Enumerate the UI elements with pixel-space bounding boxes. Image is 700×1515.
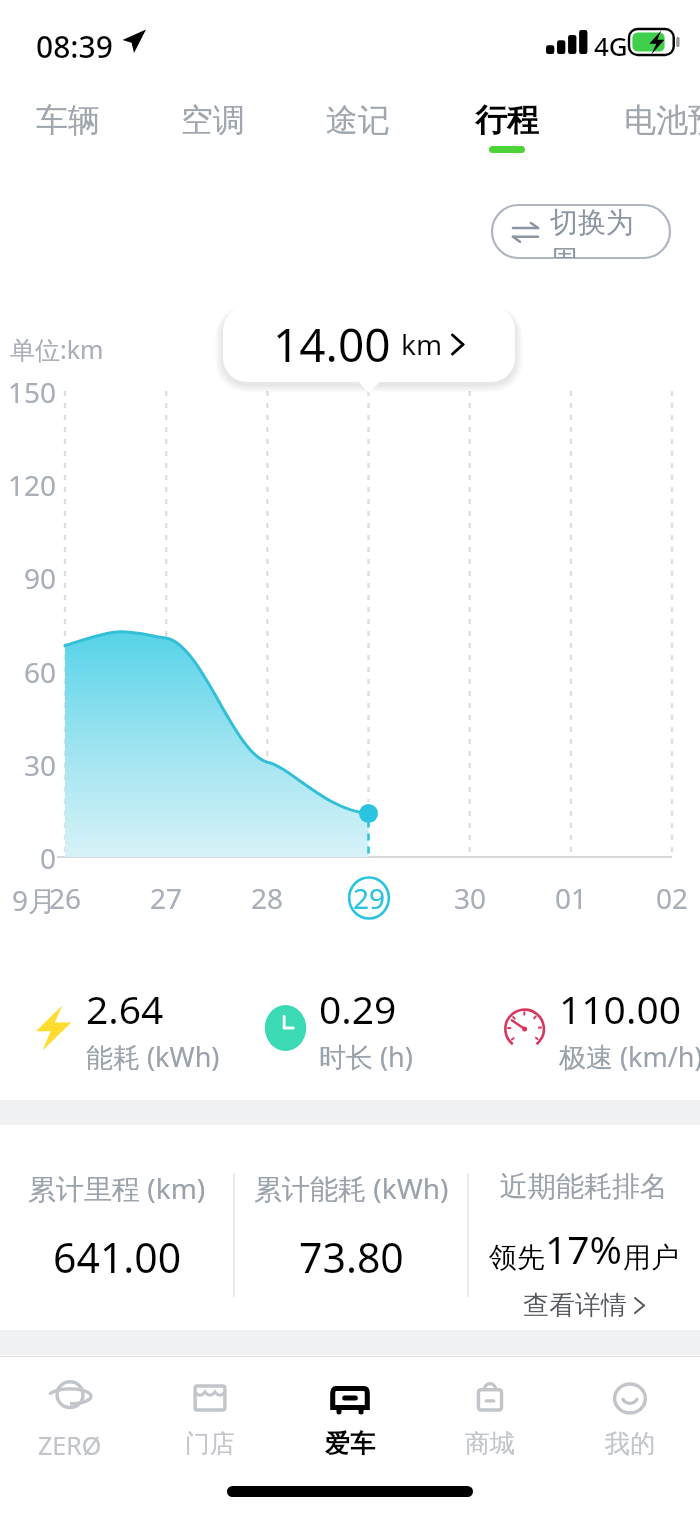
staticText: 110.00: [559, 982, 681, 1035]
staticText: 爱车: [325, 1428, 375, 1459]
staticText: 27: [150, 879, 183, 917]
button[interactable]: 爱车: [280, 1358, 420, 1470]
button[interactable]: 0.29: [263, 975, 413, 1081]
staticText: 641.00: [53, 1229, 182, 1285]
button[interactable]: 商城: [420, 1358, 560, 1470]
staticText: 切换为周: [550, 205, 654, 258]
staticText: 4G: [594, 28, 628, 63]
staticText: 空调: [181, 100, 245, 140]
button[interactable]: 累计能耗 (kWh): [234, 1125, 468, 1330]
staticText: 行程: [475, 100, 539, 140]
staticText: 0: [40, 839, 57, 877]
staticText: 查看详情: [523, 1289, 627, 1322]
staticText: 9月: [12, 881, 57, 919]
button[interactable]: 车辆: [6, 100, 130, 158]
button[interactable]: ZERØ: [0, 1358, 140, 1470]
staticText: 29: [353, 879, 386, 917]
staticText: 73.80: [299, 1229, 404, 1285]
button[interactable]: 切换为周: [492, 205, 670, 258]
staticText: km: [401, 325, 443, 363]
staticText: 用户: [623, 1240, 679, 1275]
staticText: 02: [656, 879, 689, 917]
staticText: 领先: [489, 1240, 545, 1275]
staticText: 商城: [465, 1428, 515, 1459]
staticText: 电池预: [624, 100, 700, 140]
staticText: ZERØ: [38, 1428, 102, 1462]
staticText: 途记: [326, 100, 390, 140]
staticText: 30: [24, 746, 57, 784]
staticText: 14.00: [273, 313, 391, 376]
staticText: 近期能耗排名: [500, 1169, 668, 1204]
button[interactable]: 空调: [151, 100, 275, 158]
staticText: 90: [24, 559, 57, 597]
staticText: 120: [8, 466, 57, 504]
staticText: 累计里程 (km): [28, 1169, 206, 1207]
staticText: 28: [251, 879, 284, 917]
button[interactable]: 电池预: [610, 100, 700, 158]
button[interactable]: 110.00: [503, 975, 700, 1081]
staticText: 我的: [605, 1428, 655, 1459]
staticText: 时长 (h): [319, 1038, 413, 1075]
staticText: 01: [555, 879, 588, 917]
button[interactable]: 近期能耗排名: [468, 1125, 700, 1330]
button[interactable]: 14.00: [223, 306, 515, 382]
staticText: 26: [49, 879, 82, 917]
staticText: 极速 (km/h): [559, 1038, 700, 1075]
staticText: 150: [8, 373, 57, 411]
staticText: 30: [454, 879, 487, 917]
button[interactable]: 我的: [560, 1358, 700, 1470]
staticText: 60: [24, 653, 57, 691]
staticText: 2.64: [86, 982, 164, 1035]
staticText: 累计能耗 (kWh): [254, 1169, 449, 1207]
staticText: 0.29: [319, 982, 397, 1035]
button[interactable]: 2.64: [30, 975, 220, 1081]
staticText: 能耗 (kWh): [86, 1038, 220, 1075]
staticText: 17%: [545, 1222, 623, 1275]
button[interactable]: 门店: [140, 1358, 280, 1470]
button[interactable]: 累计里程 (km): [0, 1125, 234, 1330]
staticText: 车辆: [36, 100, 100, 140]
button[interactable]: 行程: [445, 100, 569, 158]
staticText: 单位:km: [10, 332, 104, 366]
staticText: 08:39: [36, 26, 113, 67]
staticText: 门店: [185, 1428, 235, 1459]
button[interactable]: 途记: [296, 100, 420, 158]
